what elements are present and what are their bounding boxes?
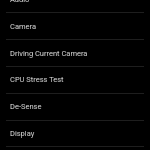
- button[interactable]: Display: [0, 120, 150, 146]
- staticText: De-Sense: [10, 102, 42, 111]
- staticText: Camera: [10, 22, 36, 31]
- staticText: Display: [10, 129, 35, 138]
- button[interactable]: Fingerprint: [0, 146, 150, 150]
- staticText: Driving Current Camera: [10, 49, 88, 58]
- button[interactable]: Audio: [0, 0, 150, 12]
- button[interactable]: Driving Current Camera: [0, 39, 150, 66]
- button[interactable]: Camera: [0, 12, 150, 39]
- staticText: CPU Stress Test: [10, 75, 64, 84]
- button[interactable]: CPU Stress Test: [0, 66, 150, 93]
- staticText: Audio: [10, 0, 30, 4]
- button[interactable]: De-Sense: [0, 93, 150, 120]
